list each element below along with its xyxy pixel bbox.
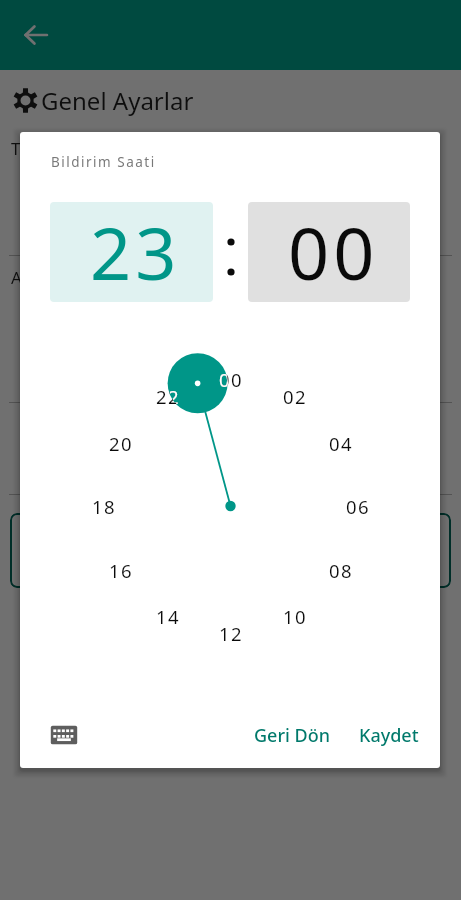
staticText: Kaydet: [359, 723, 419, 748]
staticText: 08: [329, 558, 354, 583]
staticText: 16: [109, 558, 134, 583]
button[interactable]: 00: [248, 202, 410, 302]
button[interactable]: Back: [14, 13, 58, 57]
staticText: 23: [90, 203, 181, 301]
staticText: 06: [346, 494, 371, 519]
button[interactable]: [0, 403, 461, 495]
staticText: 22: [156, 384, 181, 409]
button[interactable]: [10, 513, 451, 588]
staticText: 04: [329, 431, 354, 456]
staticText: 20: [109, 431, 134, 456]
staticText: Geri Dön: [254, 723, 331, 748]
button[interactable]: 23: [50, 202, 213, 302]
staticText: 00: [219, 367, 244, 392]
button[interactable]: Kaydet: [351, 715, 427, 756]
staticText: 22: [168, 384, 181, 409]
staticText: 12: [219, 621, 244, 646]
button[interactable]: Anlık Bildirim: [0, 256, 461, 403]
staticText: Tema Seçimi: [11, 137, 111, 160]
staticText: Anlık Bildirim: [11, 266, 117, 289]
staticText: 10: [283, 604, 308, 629]
staticText: 14: [156, 604, 181, 629]
staticText: 00: [219, 367, 228, 392]
button[interactable]: Switch to text input: [44, 715, 84, 755]
staticText: Genel Ayarlar: [41, 84, 194, 117]
staticText: 18: [92, 494, 117, 519]
button[interactable]: Geri Dön: [246, 715, 339, 756]
staticText: Bildirim Saati: [51, 153, 156, 171]
button[interactable]: Tema Seçimi: [0, 130, 461, 256]
staticText: 00: [288, 203, 379, 301]
staticText: 02: [283, 384, 308, 409]
